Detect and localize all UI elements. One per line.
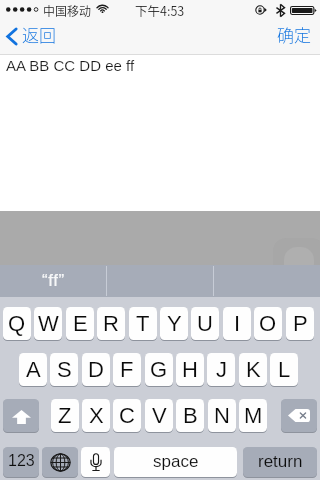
staticText: O: [259, 311, 277, 336]
button[interactable]: U: [191, 307, 219, 340]
button[interactable]: G: [145, 353, 173, 386]
button[interactable]: E: [66, 307, 94, 340]
staticText: A: [26, 357, 41, 382]
staticText: 返回: [22, 22, 56, 47]
staticText: 下午4:53: [135, 1, 185, 19]
staticText: Z: [58, 403, 72, 428]
button[interactable]: H: [176, 353, 204, 386]
button[interactable]: Voice input: [81, 447, 110, 477]
staticText: R: [103, 311, 119, 336]
staticText: D: [88, 357, 104, 382]
staticText: “ff”: [42, 271, 65, 290]
button[interactable]: Shift: [3, 399, 39, 432]
staticText: B: [183, 403, 198, 428]
staticText: K: [246, 357, 261, 382]
staticText: M: [244, 403, 263, 428]
staticText: S: [57, 357, 72, 382]
staticText: U: [197, 311, 213, 336]
staticText: 中国移动: [43, 2, 92, 19]
button[interactable]: I: [223, 307, 251, 340]
button[interactable]: X: [82, 399, 110, 432]
staticText: T: [136, 311, 150, 336]
button[interactable]: F: [113, 353, 141, 386]
button[interactable]: Numbers: [3, 447, 39, 477]
button[interactable]: 返回: [0, 25, 64, 50]
button[interactable]: J: [207, 353, 235, 386]
button[interactable]: Change keyboard: [42, 447, 78, 477]
staticText: J: [216, 357, 227, 382]
button[interactable]: space: [114, 447, 237, 477]
button[interactable]: S: [50, 353, 78, 386]
button[interactable]: Z: [51, 399, 79, 432]
staticText: X: [89, 403, 104, 428]
button[interactable]: O: [254, 307, 282, 340]
button[interactable]: D: [82, 353, 110, 386]
button[interactable]: R: [97, 307, 125, 340]
button[interactable]: B: [176, 399, 204, 432]
staticText: 123: [8, 452, 35, 470]
button[interactable]: [106, 265, 213, 297]
staticText: F: [120, 357, 134, 382]
staticText: L: [278, 357, 291, 382]
button[interactable]: A: [19, 353, 47, 386]
button[interactable]: 确定: [267, 20, 320, 55]
button[interactable]: return: [243, 447, 317, 477]
button[interactable]: Backspace: [281, 399, 317, 432]
staticText: G: [150, 357, 168, 382]
staticText: AA BB CC DD ee ff: [6, 57, 135, 74]
button[interactable]: V: [145, 399, 173, 432]
button[interactable]: C: [113, 399, 141, 432]
button[interactable]: Q: [3, 307, 31, 340]
button[interactable]: K: [239, 353, 267, 386]
staticText: Q: [8, 311, 26, 336]
staticText: H: [182, 357, 198, 382]
button[interactable]: Y: [160, 307, 188, 340]
staticText: N: [214, 403, 230, 428]
button[interactable]: [213, 265, 320, 297]
button[interactable]: T: [129, 307, 157, 340]
button[interactable]: L: [270, 353, 298, 386]
staticText: C: [119, 403, 135, 428]
staticText: P: [293, 311, 308, 336]
button[interactable]: “ff”: [0, 265, 106, 297]
staticText: 确定: [277, 22, 311, 47]
staticText: V: [152, 403, 167, 428]
staticText: Y: [167, 311, 182, 336]
staticText: space: [153, 452, 199, 471]
staticText: W: [38, 311, 59, 336]
staticText: return: [258, 452, 303, 471]
button[interactable]: P: [286, 307, 314, 340]
staticText: E: [73, 311, 88, 336]
button[interactable]: M: [239, 399, 267, 432]
button[interactable]: N: [208, 399, 236, 432]
button[interactable]: W: [34, 307, 62, 340]
staticText: I: [234, 311, 241, 336]
